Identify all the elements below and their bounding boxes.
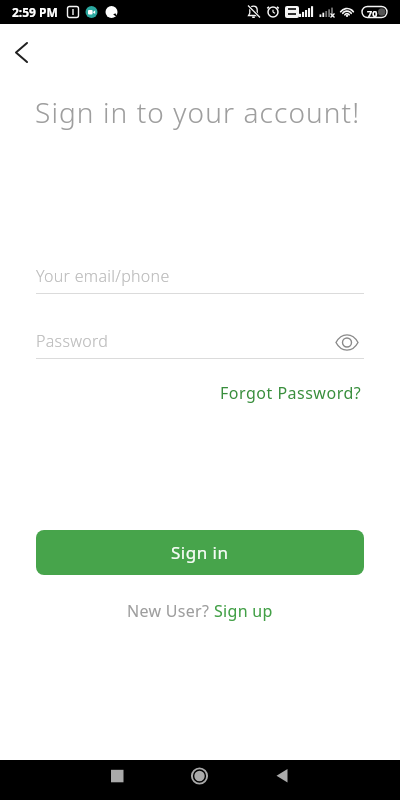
staticText: Sign in	[171, 541, 229, 564]
staticText: Sign in to your account!	[35, 93, 361, 131]
staticText: Your email/phone	[36, 265, 170, 287]
staticText: 2:59 PM	[12, 4, 58, 20]
staticText: Forgot Password?	[220, 382, 362, 404]
staticText: Sign up	[214, 600, 273, 622]
staticText: New User?	[127, 600, 214, 622]
staticText: 70	[367, 7, 378, 19]
staticText: Password	[36, 330, 109, 352]
